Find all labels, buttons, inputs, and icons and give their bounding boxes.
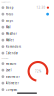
staticText: Barometer: [6, 75, 20, 78]
staticText: Sleep: [6, 6, 14, 9]
button[interactable]: Steps: [0, 17, 54, 24]
staticText: Reminders: [6, 45, 21, 48]
staticText: SENSORS: [1, 57, 8, 59]
staticText: Mail: [6, 25, 11, 29]
button[interactable]: Focus: [0, 11, 54, 17]
staticText: SHORTCUTS: [1, 1, 10, 3]
staticText: Focus: [6, 12, 13, 16]
button[interactable]: Measure: [0, 60, 54, 67]
button[interactable]: Wallet: [0, 37, 54, 43]
staticText: 12:30: [36, 6, 45, 9]
staticText: Compass: [6, 88, 17, 91]
staticText: Weather: [6, 32, 17, 35]
button[interactable]: Level: [0, 67, 54, 73]
button[interactable]: Sleep: [0, 4, 54, 11]
staticText: Level: [6, 68, 12, 72]
button[interactable]: Altimeter: [0, 80, 54, 86]
button[interactable]: Compass: [0, 86, 54, 93]
button[interactable]: Weather: [0, 30, 54, 37]
button[interactable]: Calendar: [0, 50, 54, 56]
button[interactable]: Barometer: [0, 73, 54, 80]
staticText: Measure: [6, 62, 17, 65]
staticText: Wallet: [6, 38, 14, 42]
staticText: 72%: [35, 70, 41, 73]
staticText: Altimeter: [6, 81, 19, 85]
button[interactable]: Reminders: [0, 43, 54, 50]
staticText: Steps: [6, 19, 13, 22]
button[interactable]: Mail: [0, 24, 54, 30]
staticText: Calendar: [6, 51, 18, 55]
